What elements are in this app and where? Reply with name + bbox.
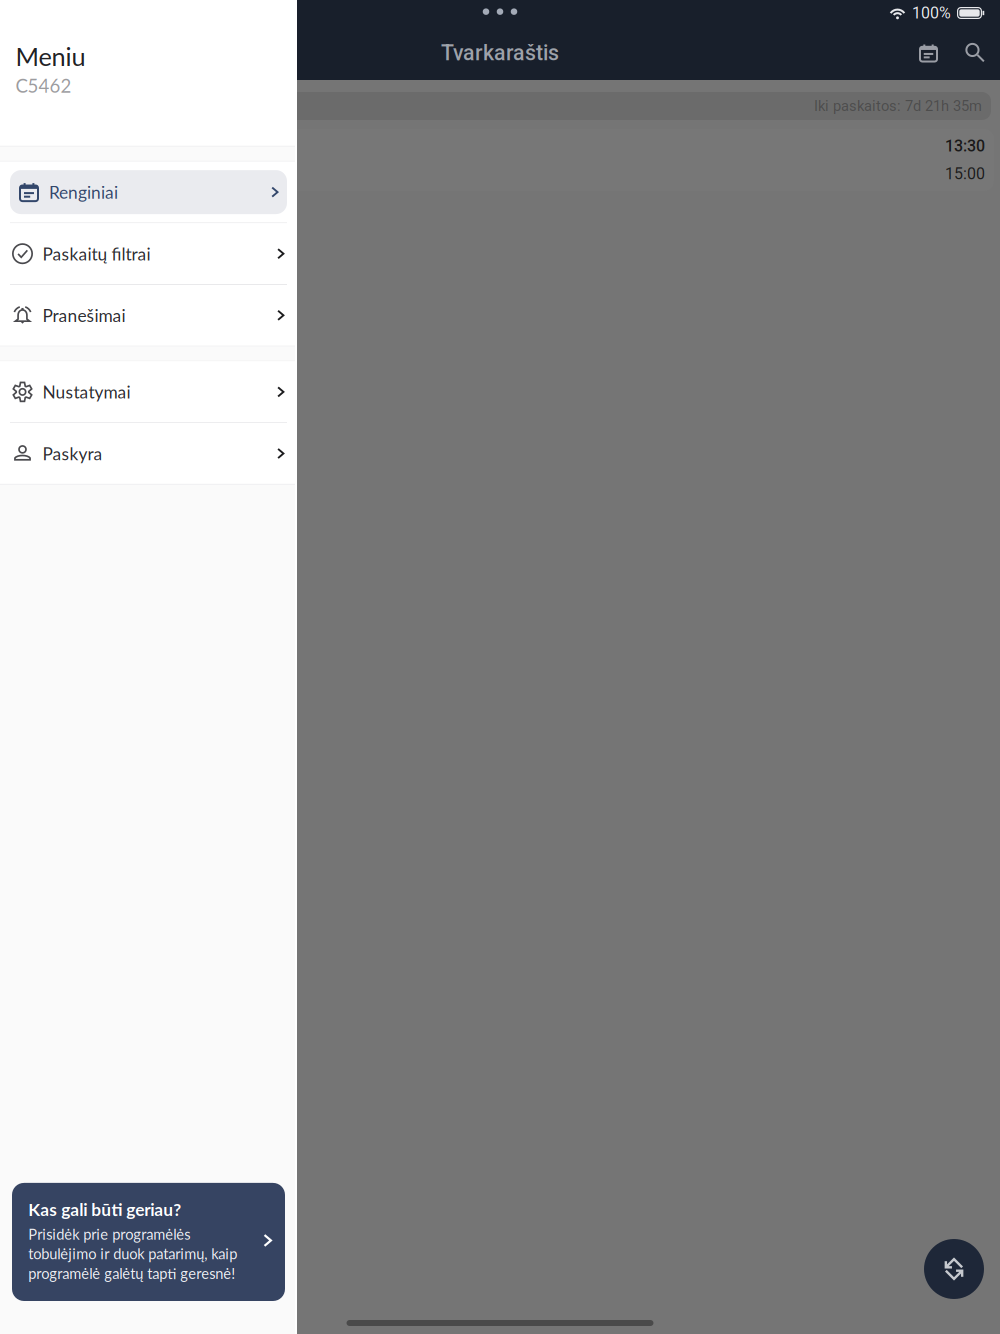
button[interactable]: Nustatymai (0, 362, 297, 422)
button[interactable]: Search (960, 33, 991, 73)
staticText: Nustatymai (42, 381, 130, 402)
button[interactable]: Calendar (913, 33, 944, 73)
button[interactable]: Kas gali būti geriau? (12, 1183, 285, 1301)
button[interactable]: Refresh (924, 1239, 984, 1299)
staticText: Prisidėk prie programėlės tobulėjimo ir … (28, 1225, 237, 1282)
button[interactable]: Paskaitų filtrai (0, 223, 297, 284)
button[interactable]: Pranešimai (0, 285, 297, 346)
button[interactable]: Renginiai (0, 162, 297, 222)
staticText: Tvarkaraštis (441, 40, 559, 65)
staticText: 13:30 (945, 137, 985, 156)
staticText: Renginiai (49, 182, 118, 202)
staticText: Paskyra (42, 443, 102, 464)
button[interactable]: Paskyra (0, 423, 297, 484)
staticText: 15:00 (945, 164, 985, 183)
staticText: C5462 (15, 74, 71, 97)
staticText: Iki paskaitos: 7d 21h 35m (814, 97, 982, 115)
staticText: Pranešimai (42, 305, 125, 326)
staticText: Paskaitų filtrai (42, 243, 150, 264)
staticText: Kas gali būti geriau? (28, 1199, 181, 1220)
staticText: Meniu (15, 41, 85, 71)
staticText: 100% (912, 4, 951, 22)
